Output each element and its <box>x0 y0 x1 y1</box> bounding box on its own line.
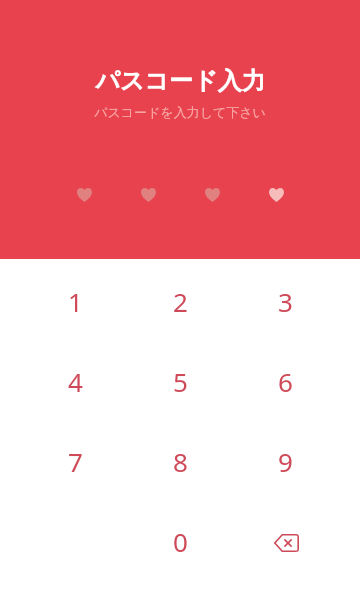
staticText: 8 <box>173 444 188 479</box>
staticText: 2 <box>173 284 188 319</box>
staticText: 3 <box>278 284 293 319</box>
button[interactable]: 9 <box>233 421 338 501</box>
staticText: 4 <box>68 364 83 399</box>
button[interactable]: 0 <box>128 501 233 581</box>
staticText: 5 <box>173 364 188 399</box>
button[interactable]: 8 <box>128 421 233 501</box>
staticText: 9 <box>278 444 293 479</box>
button[interactable]: 5 <box>128 341 233 421</box>
staticText: 6 <box>278 364 293 399</box>
button[interactable]: Delete <box>233 501 338 581</box>
button[interactable]: 4 <box>23 341 128 421</box>
staticText: パスコードを入力して下さい <box>94 104 266 120</box>
staticText: 1 <box>68 284 83 319</box>
button[interactable]: 7 <box>23 421 128 501</box>
button[interactable]: 6 <box>233 341 338 421</box>
staticText: 0 <box>173 524 188 559</box>
staticText: 7 <box>68 444 83 479</box>
button[interactable]: 3 <box>233 261 338 341</box>
staticText: パスコード入力 <box>95 66 266 96</box>
button[interactable]: 2 <box>128 261 233 341</box>
button[interactable]: 1 <box>23 261 128 341</box>
